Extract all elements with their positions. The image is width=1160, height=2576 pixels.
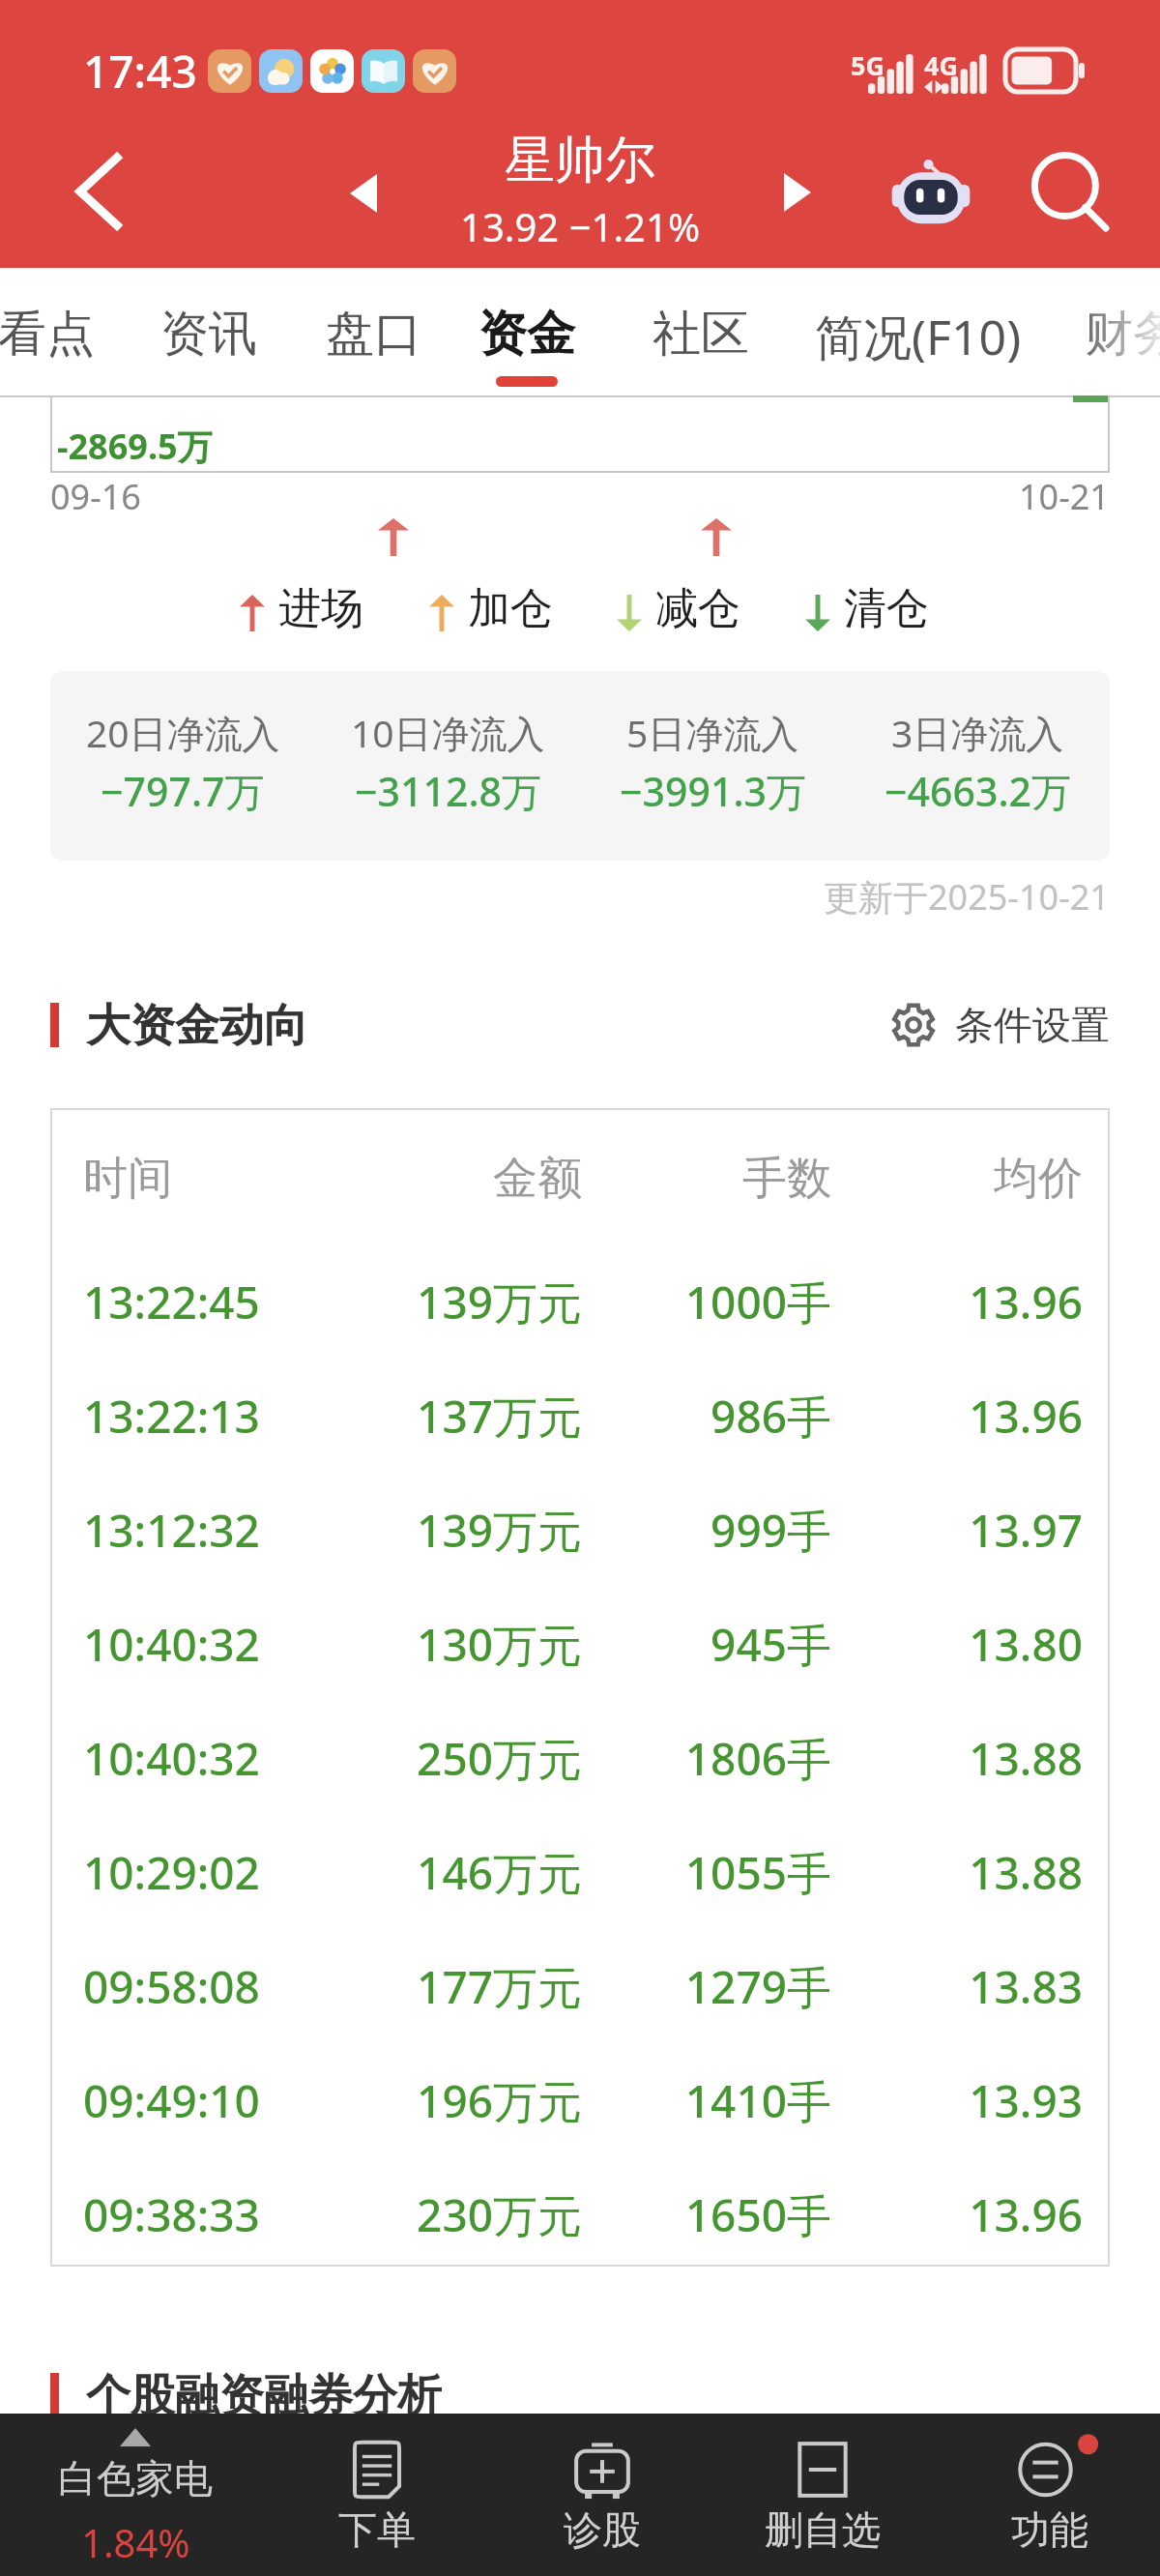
button[interactable]: 条件设置 xyxy=(891,1001,1110,1049)
button[interactable]: 资讯 xyxy=(126,268,292,395)
button[interactable]: 13:22:13 xyxy=(50,1386,1110,1444)
button[interactable]: AI assistant xyxy=(878,137,984,244)
staticText: 146万元 xyxy=(50,1842,582,1900)
button[interactable]: 10:29:02 xyxy=(50,1842,1110,1900)
button[interactable]: 13:12:32 xyxy=(50,1500,1110,1558)
staticText: 财务 xyxy=(1085,304,1160,365)
staticText: 13:22:45 xyxy=(83,1272,260,1330)
button[interactable]: 下单 xyxy=(271,2414,483,2576)
staticText: 1000手 xyxy=(50,1272,831,1330)
staticText: 大资金动向 xyxy=(86,998,308,1052)
button[interactable]: Search xyxy=(1012,134,1128,250)
staticText: 时间 xyxy=(83,1151,172,1207)
button[interactable]: 10:40:32 xyxy=(50,1728,1110,1786)
staticText: 13:12:32 xyxy=(83,1500,260,1558)
button[interactable]: 09:58:08 xyxy=(50,1956,1110,2014)
staticText: 个股融资融券分析 xyxy=(86,2368,442,2422)
staticText: 09:49:10 xyxy=(83,2070,260,2128)
button[interactable]: 简况(F10) xyxy=(780,268,1057,395)
button[interactable]: 09:49:10 xyxy=(50,2070,1110,2128)
staticText: 1279手 xyxy=(50,1956,831,2014)
staticText: 137万元 xyxy=(50,1386,582,1444)
staticText: -2869.5万 xyxy=(57,423,213,470)
staticText: 1410手 xyxy=(50,2070,831,2128)
button[interactable]: 09:38:33 xyxy=(50,2184,1110,2242)
staticText: 13.96 xyxy=(50,2184,1083,2242)
staticText: 1806手 xyxy=(50,1728,831,1786)
staticText: −797.7万 xyxy=(101,764,265,818)
staticText: 13.96 xyxy=(50,1272,1083,1330)
button[interactable]: Next stock xyxy=(749,144,846,241)
staticText: 999手 xyxy=(50,1500,831,1558)
staticText: 139万元 xyxy=(50,1272,582,1330)
staticText: 13.97 xyxy=(50,1500,1083,1558)
staticText: 139万元 xyxy=(50,1500,582,1558)
button[interactable]: 资金 xyxy=(444,268,610,395)
button[interactable]: 社区 xyxy=(618,268,784,395)
button[interactable]: Back xyxy=(41,133,157,249)
button[interactable]: 进场 xyxy=(240,576,363,640)
staticText: 加仓 xyxy=(468,582,553,635)
staticText: 3日净流入 xyxy=(891,707,1064,758)
button[interactable]: 诊股 xyxy=(496,2414,709,2576)
staticText: 进场 xyxy=(278,582,363,635)
button[interactable]: 盘口 xyxy=(291,268,457,395)
staticText: 13.88 xyxy=(50,1842,1083,1900)
staticText: 均价 xyxy=(50,1151,1083,1207)
staticText: 230万元 xyxy=(50,2184,582,2242)
staticText: 简况(F10) xyxy=(815,304,1022,369)
staticText: −3112.8万 xyxy=(355,764,541,818)
staticText: 13.83 xyxy=(50,1956,1083,2014)
staticText: 白色家电 xyxy=(58,2454,213,2503)
staticText: 13.80 xyxy=(50,1614,1083,1672)
button[interactable]: 20日净流入 xyxy=(50,671,1110,861)
staticText: 196万元 xyxy=(50,2070,582,2128)
button[interactable]: 13:22:45 xyxy=(50,1272,1110,1330)
button[interactable]: 加仓 xyxy=(429,576,553,640)
staticText: 13.96 xyxy=(50,1386,1083,1444)
button[interactable]: 看点 xyxy=(0,268,130,395)
staticText: 986手 xyxy=(50,1386,831,1444)
staticText: 09-16 xyxy=(50,473,141,517)
staticText: 手数 xyxy=(50,1151,831,1207)
staticText: 13.92 −1.21% xyxy=(460,200,701,252)
button[interactable]: 清仓 xyxy=(805,576,929,640)
staticText: 17:43 xyxy=(83,41,197,102)
staticText: 13:22:13 xyxy=(83,1386,260,1444)
staticText: 资讯 xyxy=(160,304,257,365)
staticText: 删自选 xyxy=(765,2505,881,2554)
staticText: 250万元 xyxy=(50,1728,582,1786)
staticText: −4663.2万 xyxy=(884,764,1071,818)
staticText: 5G xyxy=(851,47,884,83)
staticText: 社区 xyxy=(652,304,749,365)
staticText: 4G xyxy=(924,47,958,83)
staticText: 13.93 xyxy=(50,2070,1083,2128)
staticText: 下单 xyxy=(338,2505,416,2554)
button[interactable]: 10:40:32 xyxy=(50,1614,1110,1672)
button[interactable]: Previous stock xyxy=(315,145,412,242)
button[interactable]: 财务 xyxy=(1050,268,1160,395)
staticText: −3991.3万 xyxy=(620,764,806,818)
staticText: 10:40:32 xyxy=(83,1728,260,1786)
button[interactable]: 功能 xyxy=(943,2414,1156,2576)
staticText: 金额 xyxy=(50,1151,582,1207)
staticText: 盘口 xyxy=(326,304,422,365)
staticText: 20日净流入 xyxy=(86,707,280,758)
staticText: 09:38:33 xyxy=(83,2184,260,2242)
button[interactable]: 白色家电 xyxy=(19,2414,251,2576)
staticText: 945手 xyxy=(50,1614,831,1672)
staticText: 1055手 xyxy=(50,1842,831,1900)
staticText: 13.88 xyxy=(50,1728,1083,1786)
staticText: 资金 xyxy=(478,304,575,365)
staticText: 清仓 xyxy=(844,582,929,635)
staticText: 10:40:32 xyxy=(83,1614,260,1672)
staticText: 功能 xyxy=(1011,2505,1088,2554)
staticText: 09:58:08 xyxy=(83,1956,260,2014)
staticText: 1.84% xyxy=(81,2516,190,2568)
button[interactable]: 删自选 xyxy=(716,2414,929,2576)
staticText: 1650手 xyxy=(50,2184,831,2242)
staticText: 177万元 xyxy=(50,1956,582,2014)
button[interactable]: 减仓 xyxy=(617,576,740,640)
staticText: 10-21 xyxy=(1019,473,1110,517)
staticText: 减仓 xyxy=(655,582,740,635)
